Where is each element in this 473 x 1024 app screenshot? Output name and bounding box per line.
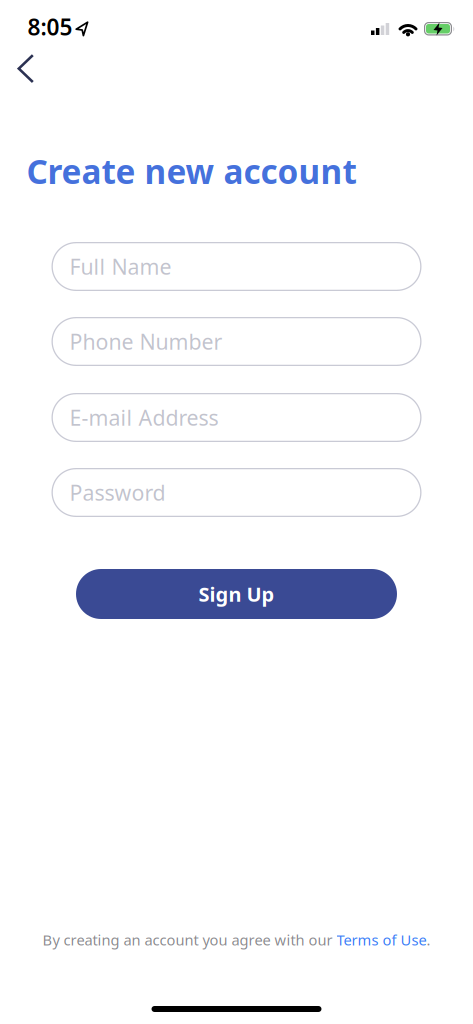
button[interactable] xyxy=(6,47,50,91)
staticText: E-mail Address xyxy=(69,403,218,432)
staticText: . xyxy=(426,930,430,949)
staticText: Create new account xyxy=(26,149,356,193)
staticText: Sign Up xyxy=(198,581,274,607)
staticText: 8:05 xyxy=(27,12,72,42)
button[interactable]: Full Name xyxy=(51,242,421,291)
staticText: Phone Number xyxy=(69,327,222,356)
staticText: Terms of Use xyxy=(336,930,426,949)
button[interactable]: Sign Up xyxy=(76,569,397,619)
staticText: By creating an account you agree with ou… xyxy=(42,930,336,949)
button[interactable]: Terms of Use xyxy=(336,930,426,949)
staticText: Password xyxy=(69,478,165,507)
button[interactable]: Phone Number xyxy=(51,317,421,366)
button[interactable]: Password xyxy=(51,468,421,517)
staticText: Full Name xyxy=(69,252,171,281)
button[interactable]: E-mail Address xyxy=(51,393,421,442)
